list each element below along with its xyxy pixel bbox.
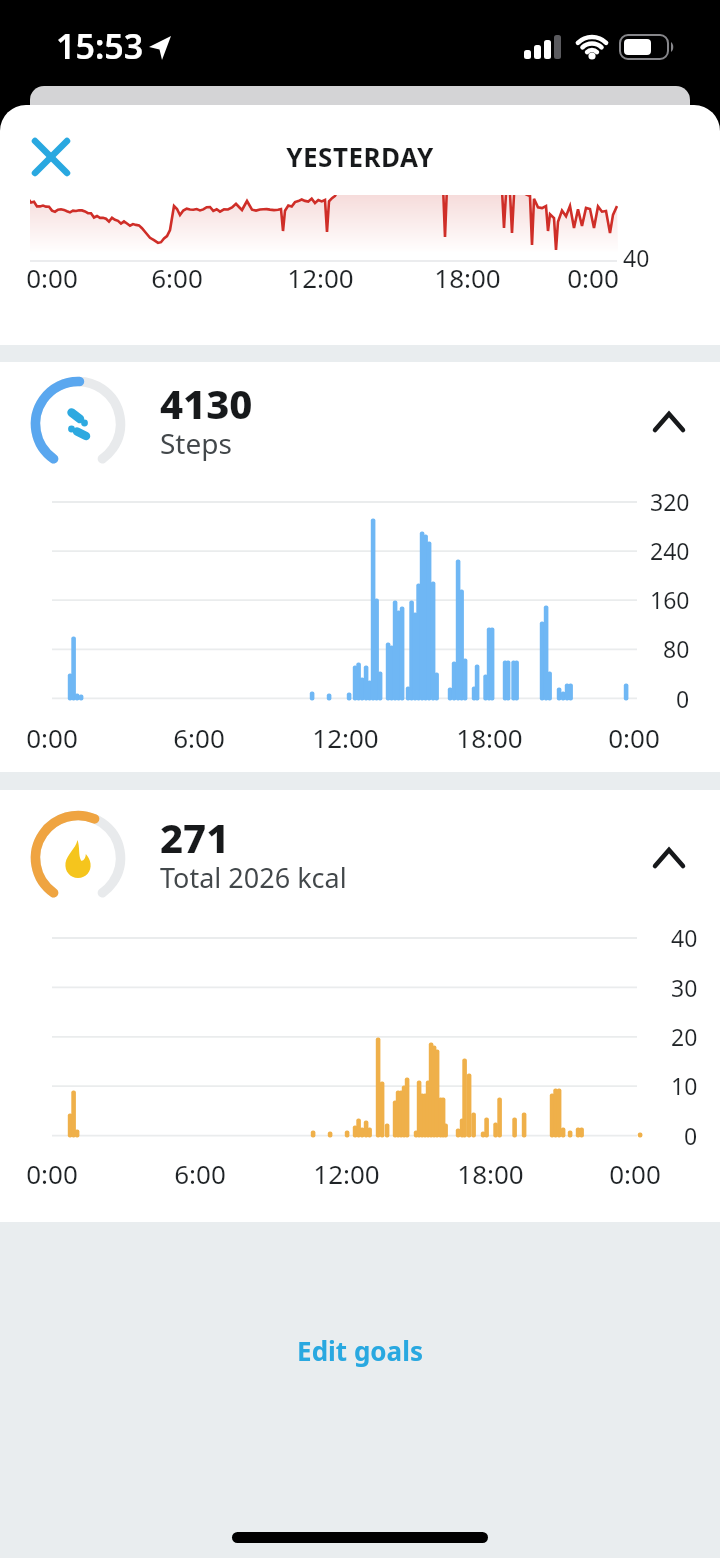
staticText: 18:00 [456, 720, 523, 755]
staticText: Steps [160, 424, 232, 462]
staticText: 160 [650, 584, 690, 615]
staticText: 0 [684, 1120, 698, 1151]
staticText: 271 [160, 810, 230, 864]
staticText: 18:00 [457, 1156, 524, 1191]
staticText: 30 [671, 972, 698, 1003]
staticText: 0:00 [26, 1156, 78, 1191]
staticText: 0 [676, 683, 690, 714]
staticText: YESTERDAY [286, 139, 434, 174]
staticText: 0:00 [26, 720, 78, 755]
staticText: 15:53 [56, 23, 144, 69]
staticText: 6:00 [151, 260, 203, 295]
staticText: 240 [650, 535, 690, 566]
staticText: 320 [650, 486, 690, 517]
staticText: Total 2026 kcal [160, 859, 347, 896]
button[interactable] [636, 396, 700, 448]
staticText: 0:00 [567, 260, 619, 295]
staticText: 12:00 [312, 720, 379, 755]
staticText: 40 [671, 922, 698, 953]
staticText: 0:00 [26, 260, 78, 295]
staticText: 6:00 [174, 1156, 226, 1191]
staticText: 6:00 [173, 720, 225, 755]
staticText: 12:00 [313, 1156, 380, 1191]
staticText: 80 [663, 633, 690, 664]
staticText: 40 [623, 242, 650, 273]
staticText: 0:00 [609, 1156, 661, 1191]
staticText: Edit goals [297, 1333, 423, 1368]
staticText: 4130 [160, 376, 253, 430]
staticText: 18:00 [434, 260, 501, 295]
staticText: 0:00 [608, 720, 660, 755]
button[interactable] [636, 832, 700, 884]
staticText: 20 [671, 1021, 698, 1052]
button[interactable] [280, 1326, 440, 1382]
staticText: 12:00 [287, 260, 354, 295]
button[interactable] [20, 126, 82, 188]
staticText: 10 [671, 1070, 698, 1101]
